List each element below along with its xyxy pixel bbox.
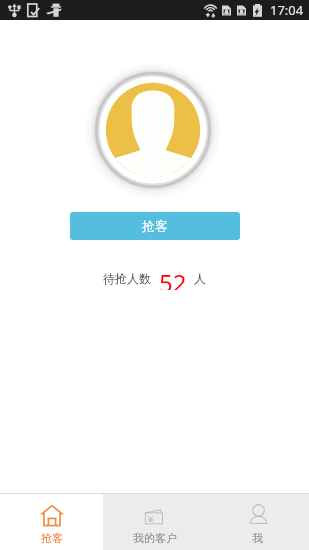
- staticText: 抢客: [41, 531, 63, 545]
- button[interactable]: 我的客户: [103, 494, 206, 550]
- button[interactable]: 抢客: [70, 212, 240, 240]
- staticText: 待抢人数: [103, 271, 151, 286]
- button[interactable]: 我: [206, 494, 309, 550]
- staticText: 17:04: [270, 1, 304, 19]
- button[interactable]: 抢客: [0, 494, 103, 550]
- staticText: 人: [194, 271, 206, 286]
- staticText: 我: [252, 531, 263, 545]
- staticText: 抢客: [142, 218, 168, 234]
- staticText: 我的客户: [133, 531, 177, 545]
- staticText: 52: [159, 266, 187, 290]
